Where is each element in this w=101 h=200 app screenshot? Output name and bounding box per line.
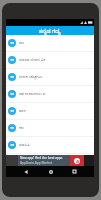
button[interactable]: ಮು (6, 35, 94, 51)
button[interactable]: ಜೀವನ ಚರಿತ್ರೆಗಳು (6, 69, 94, 85)
button[interactable]: ಹಾಸ (6, 103, 94, 119)
staticText: AppBrain App Market (20, 161, 53, 165)
button[interactable]: Home (45, 166, 56, 177)
button[interactable]: ಮಾಹಿತಿ (6, 137, 94, 153)
staticText: ಜೀವನ ಚರಿತ್ರೆಗಳು (19, 74, 43, 80)
button[interactable]: ಕಥೆ ಸಂಕಲನಗಳು ದ (6, 86, 94, 102)
staticText: ಕವ (19, 126, 24, 130)
staticText: New app! Find the best apps (20, 156, 63, 160)
staticText: ಹಾಸ (19, 109, 26, 113)
button[interactable]: ಮಾನವ ಜೀವನ ವಿಕ (6, 52, 94, 68)
staticText: ಮು (19, 41, 25, 45)
button[interactable]: ಕವ (6, 120, 94, 136)
staticText: ಕಥೆ ಸಂಕಲನಗಳು ದ (19, 91, 46, 97)
staticText: ಕನ್ನಡ ಗದ್ಯ (39, 27, 61, 35)
staticText: ಮಾಹಿತಿ (19, 143, 30, 147)
staticText: ಮಾನವ ಜೀವನ ವಿಕ (19, 57, 46, 63)
button[interactable]: Recents (69, 166, 80, 177)
button[interactable]: Back (20, 166, 31, 177)
staticText: a (76, 158, 79, 164)
